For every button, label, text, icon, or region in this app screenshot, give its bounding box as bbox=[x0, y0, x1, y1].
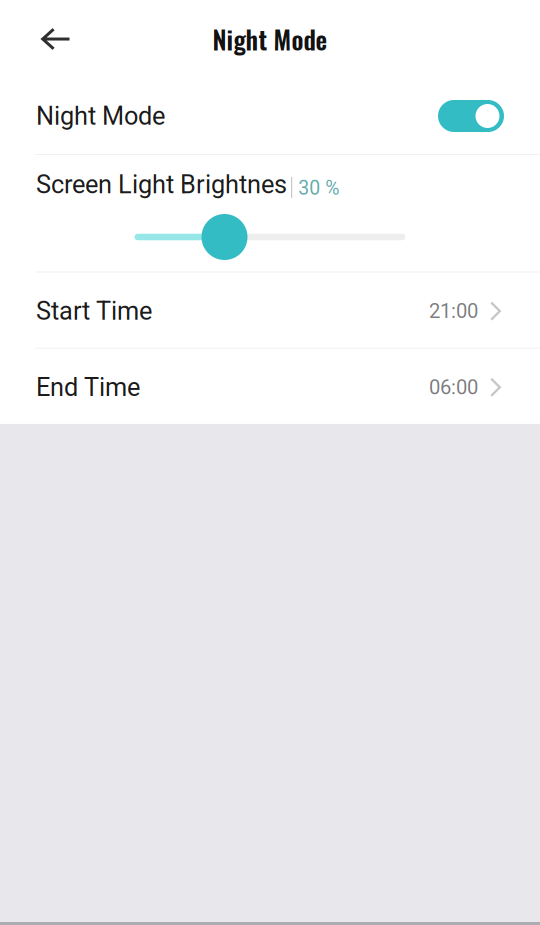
staticText: Night Mode bbox=[36, 101, 165, 131]
button[interactable]: End Time bbox=[0, 349, 540, 424]
button[interactable]: Start Time bbox=[0, 272, 540, 348]
button[interactable]: Back bbox=[33, 14, 79, 64]
staticText: Start Time bbox=[36, 296, 152, 326]
staticText: 21:00 bbox=[429, 299, 478, 323]
staticText: Night Mode bbox=[212, 20, 327, 58]
button[interactable]: Screen light brightness bbox=[134, 214, 405, 260]
staticText: 30 % bbox=[298, 177, 339, 199]
button[interactable]: Night Mode bbox=[0, 78, 540, 154]
staticText: Screen Light Brightnes bbox=[36, 170, 287, 199]
staticText: 06:00 bbox=[429, 375, 478, 399]
staticText: End Time bbox=[36, 372, 140, 402]
